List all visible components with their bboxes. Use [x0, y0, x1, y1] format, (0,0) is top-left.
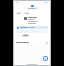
button[interactable]: [16, 12, 22, 14]
button[interactable]: [25, 7, 39, 10]
button[interactable]: App logo: [31, 5, 34, 8]
button[interactable]: [16, 16, 48, 25]
button[interactable]: [14, 41, 50, 44]
button[interactable]: [16, 26, 48, 29]
button[interactable]: Compose: [43, 56, 48, 61]
button[interactable]: [24, 12, 30, 14]
button[interactable]: [21, 34, 30, 37]
